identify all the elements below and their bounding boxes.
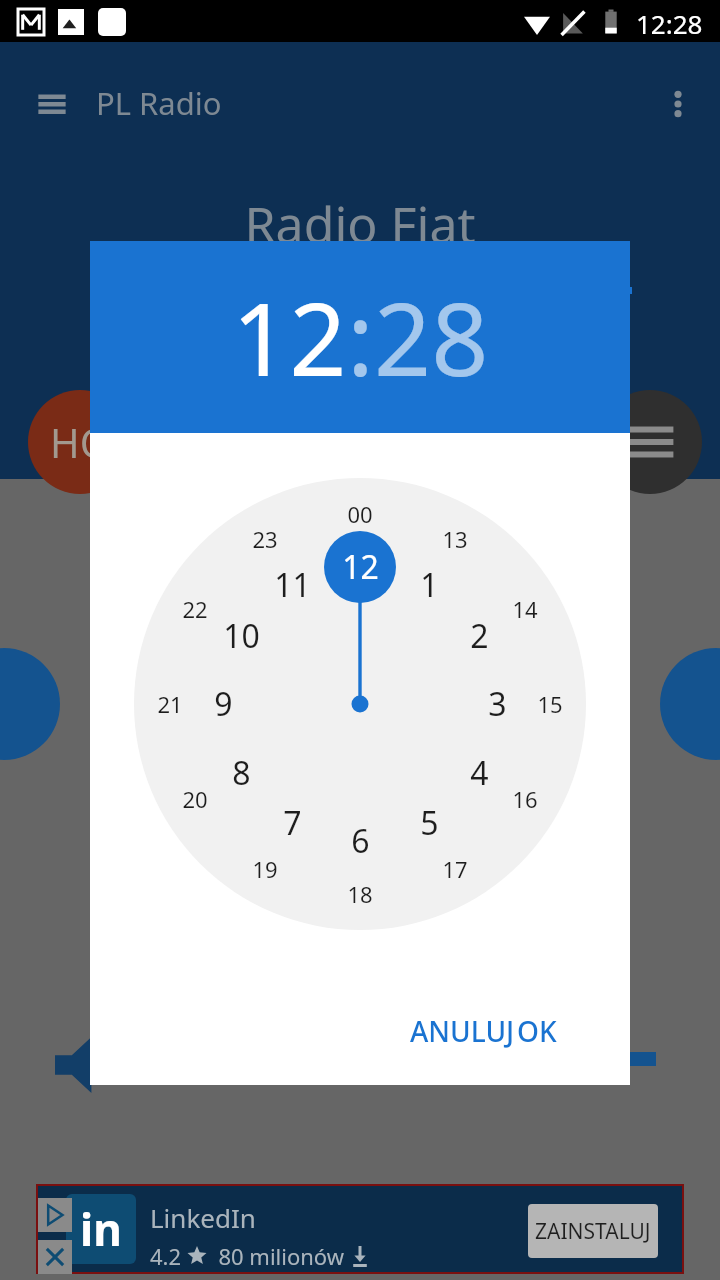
button[interactable]: 8 [205, 749, 277, 797]
staticText: ZAINSTALUJ [535, 1217, 651, 1246]
button[interactable]: 21 [134, 680, 206, 728]
button[interactable]: 17 [419, 845, 491, 893]
button[interactable]: 9 [187, 680, 259, 728]
button[interactable]: 4 [443, 749, 515, 797]
button[interactable]: 6 [324, 817, 396, 865]
staticText: 28 [374, 269, 489, 405]
staticText: 21 [157, 689, 183, 719]
button[interactable]: 28 [374, 269, 489, 405]
staticText: 15 [537, 689, 563, 719]
staticText: 3 [488, 682, 507, 726]
button[interactable] [0, 648, 60, 760]
button[interactable]: 12 [232, 269, 347, 405]
staticText: 4.2 [150, 1241, 187, 1271]
staticText: 2 [470, 614, 489, 658]
button[interactable]: 20 [159, 775, 231, 823]
staticText: 22 [182, 594, 208, 624]
staticText: 18 [347, 879, 373, 909]
button[interactable]: Volume [48, 1030, 118, 1100]
button[interactable]: OK [482, 999, 592, 1063]
staticText: 4 [470, 751, 489, 795]
button[interactable]: 3 [461, 680, 533, 728]
button[interactable]: 5 [393, 799, 465, 847]
button[interactable]: Close ad [38, 1240, 72, 1274]
button[interactable]: Open navigation drawer [30, 82, 74, 126]
staticText: HO [50, 415, 111, 469]
staticText: 11 [274, 563, 311, 607]
staticText: PL Radio [96, 82, 222, 124]
button[interactable]: 23 [229, 515, 301, 563]
button[interactable]: 1 [393, 561, 465, 609]
button[interactable]: 11 [256, 561, 328, 609]
staticText: ANULUJ [410, 1012, 515, 1050]
staticText: 19 [252, 854, 278, 884]
button[interactable]: 19 [229, 845, 301, 893]
button[interactable]: 15 [514, 680, 586, 728]
staticText: 13 [442, 524, 468, 554]
staticText: Radio Fiat [0, 190, 720, 258]
staticText: OK [517, 1012, 557, 1050]
staticText: : [347, 269, 374, 405]
staticText: 10 [223, 614, 260, 658]
button[interactable]: More options [656, 82, 700, 126]
staticText: 12:28 [636, 6, 703, 41]
staticText: 20 [182, 784, 208, 814]
button[interactable]: ANULUJ [387, 999, 537, 1063]
staticText: 1 [420, 563, 439, 607]
staticText: 8 [232, 751, 251, 795]
staticText: 00 [347, 499, 373, 529]
button[interactable]: Ad info [38, 1198, 72, 1232]
button[interactable]: 00 [324, 490, 396, 538]
staticText: 6 [351, 819, 370, 863]
staticText: 5 [420, 801, 439, 845]
button[interactable]: 10 [205, 612, 277, 660]
staticText: 80 milionów [207, 1241, 350, 1271]
button[interactable] [660, 648, 720, 760]
staticText: 9 [214, 682, 233, 726]
button[interactable]: 13 [419, 515, 491, 563]
button[interactable]: ZAINSTALUJ [528, 1204, 658, 1258]
staticText: 12 [342, 545, 379, 589]
button[interactable]: 16 [489, 775, 561, 823]
button[interactable]: in [38, 1186, 682, 1272]
button[interactable]: 7 [256, 799, 328, 847]
staticText: 23 [252, 524, 278, 554]
staticText: 7 [283, 801, 302, 845]
staticText: 12 [232, 269, 347, 405]
button[interactable]: 22 [159, 585, 231, 633]
staticText: 16 [512, 784, 538, 814]
button[interactable]: 18 [324, 870, 396, 918]
button[interactable]: Playlist [598, 390, 702, 494]
staticText: 14 [512, 594, 538, 624]
button[interactable]: 2 [443, 612, 515, 660]
button[interactable]: 14 [489, 585, 561, 633]
staticText: in [80, 1199, 122, 1259]
button[interactable]: 12 [324, 543, 396, 591]
button[interactable]: HO [28, 390, 132, 494]
staticText: 17 [442, 854, 468, 884]
staticText: LinkedIn [150, 1200, 256, 1235]
